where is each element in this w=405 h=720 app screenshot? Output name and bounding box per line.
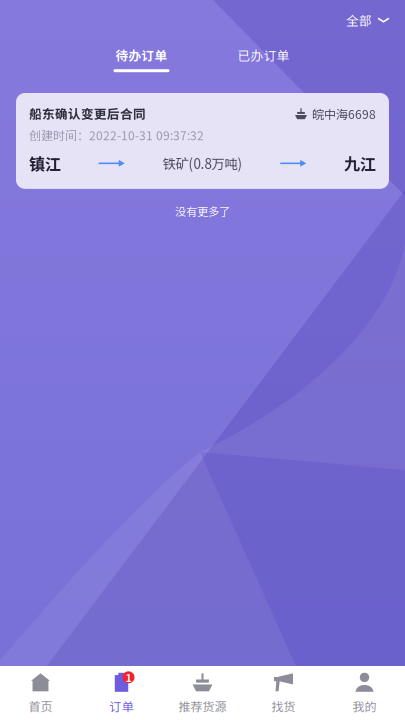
button[interactable]: 已办订单 bbox=[225, 46, 301, 72]
staticText: 首页 bbox=[28, 697, 52, 715]
staticText: 我的 bbox=[352, 697, 376, 715]
button[interactable]: 船东确认变更后合同 bbox=[16, 93, 389, 189]
button[interactable]: 找货 bbox=[243, 665, 324, 720]
staticText: 待办订单 bbox=[115, 46, 167, 64]
staticText: 全部 bbox=[346, 11, 372, 29]
staticText: 镇江 bbox=[29, 152, 61, 175]
button[interactable]: 全部 bbox=[330, 1, 405, 39]
staticText: 推荐货源 bbox=[178, 697, 226, 715]
staticText: 九江 bbox=[344, 152, 376, 175]
button[interactable]: 首页 bbox=[0, 665, 81, 720]
staticText: 已办订单 bbox=[237, 46, 289, 64]
staticText: 皖中海6698 bbox=[312, 105, 376, 122]
button[interactable]: 我的 bbox=[324, 665, 405, 720]
staticText: 订单 bbox=[109, 697, 133, 715]
staticText: 船东确认变更后合同 bbox=[29, 104, 146, 122]
staticText: 1 bbox=[125, 670, 131, 685]
staticText: 找货 bbox=[271, 697, 295, 715]
button[interactable]: 1 bbox=[81, 665, 162, 720]
staticText: 创建时间：2022-10-31 09:37:32 bbox=[29, 126, 204, 144]
staticText: 没有更多了 bbox=[175, 203, 230, 219]
button[interactable]: 待办订单 bbox=[103, 46, 179, 72]
button[interactable]: 推荐货源 bbox=[162, 665, 243, 720]
staticText: 铁矿(0.8万吨) bbox=[162, 154, 242, 173]
